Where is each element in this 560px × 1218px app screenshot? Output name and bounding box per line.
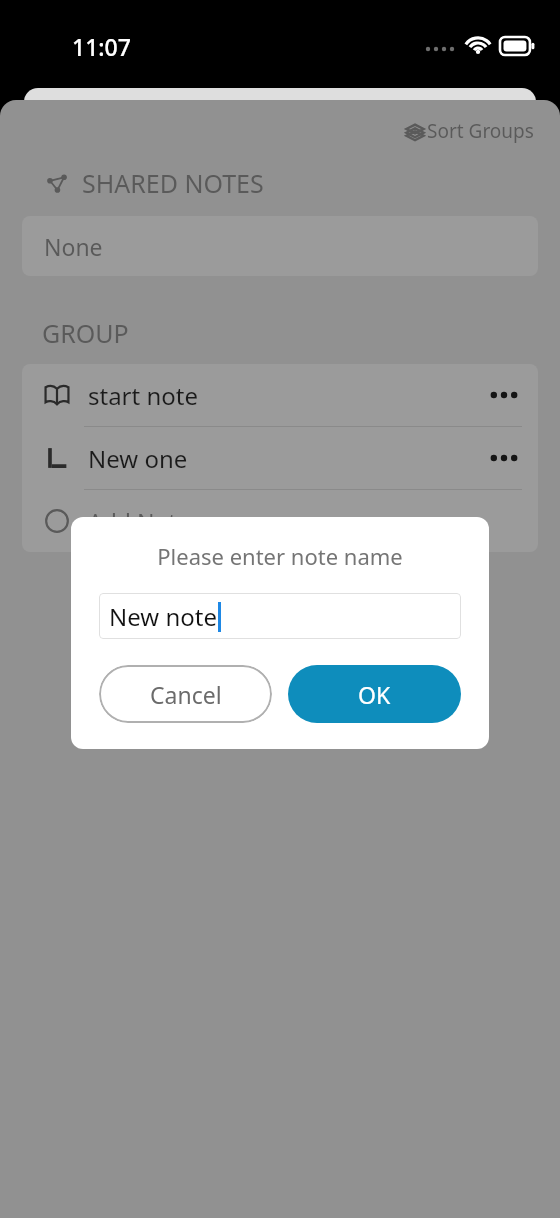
button[interactable]: start note [22, 364, 538, 426]
staticText: OK [358, 679, 391, 710]
staticText: Add Note [88, 506, 190, 537]
staticText: Sort Groups [427, 118, 534, 144]
button[interactable]: Sort Groups [405, 118, 534, 144]
staticText: Please enter note name [99, 541, 461, 571]
staticText: Cancel [150, 679, 222, 710]
staticText: 11:07 [72, 31, 131, 62]
staticText: None [44, 231, 103, 262]
staticText: New note [109, 600, 217, 633]
button[interactable]: New one [22, 427, 538, 489]
button[interactable]: More options for New one [480, 434, 528, 482]
staticText: New one [88, 442, 188, 475]
staticText: GROUP [42, 316, 129, 350]
button[interactable]: More options for start note [480, 371, 528, 419]
button[interactable]: OK [288, 665, 461, 723]
staticText: start note [88, 379, 198, 412]
button[interactable]: Cancel [99, 665, 272, 723]
staticText: SHARED NOTES [82, 166, 264, 200]
button[interactable]: None [22, 216, 538, 276]
button[interactable]: New note [99, 593, 461, 639]
button[interactable]: Add Note [22, 490, 538, 552]
